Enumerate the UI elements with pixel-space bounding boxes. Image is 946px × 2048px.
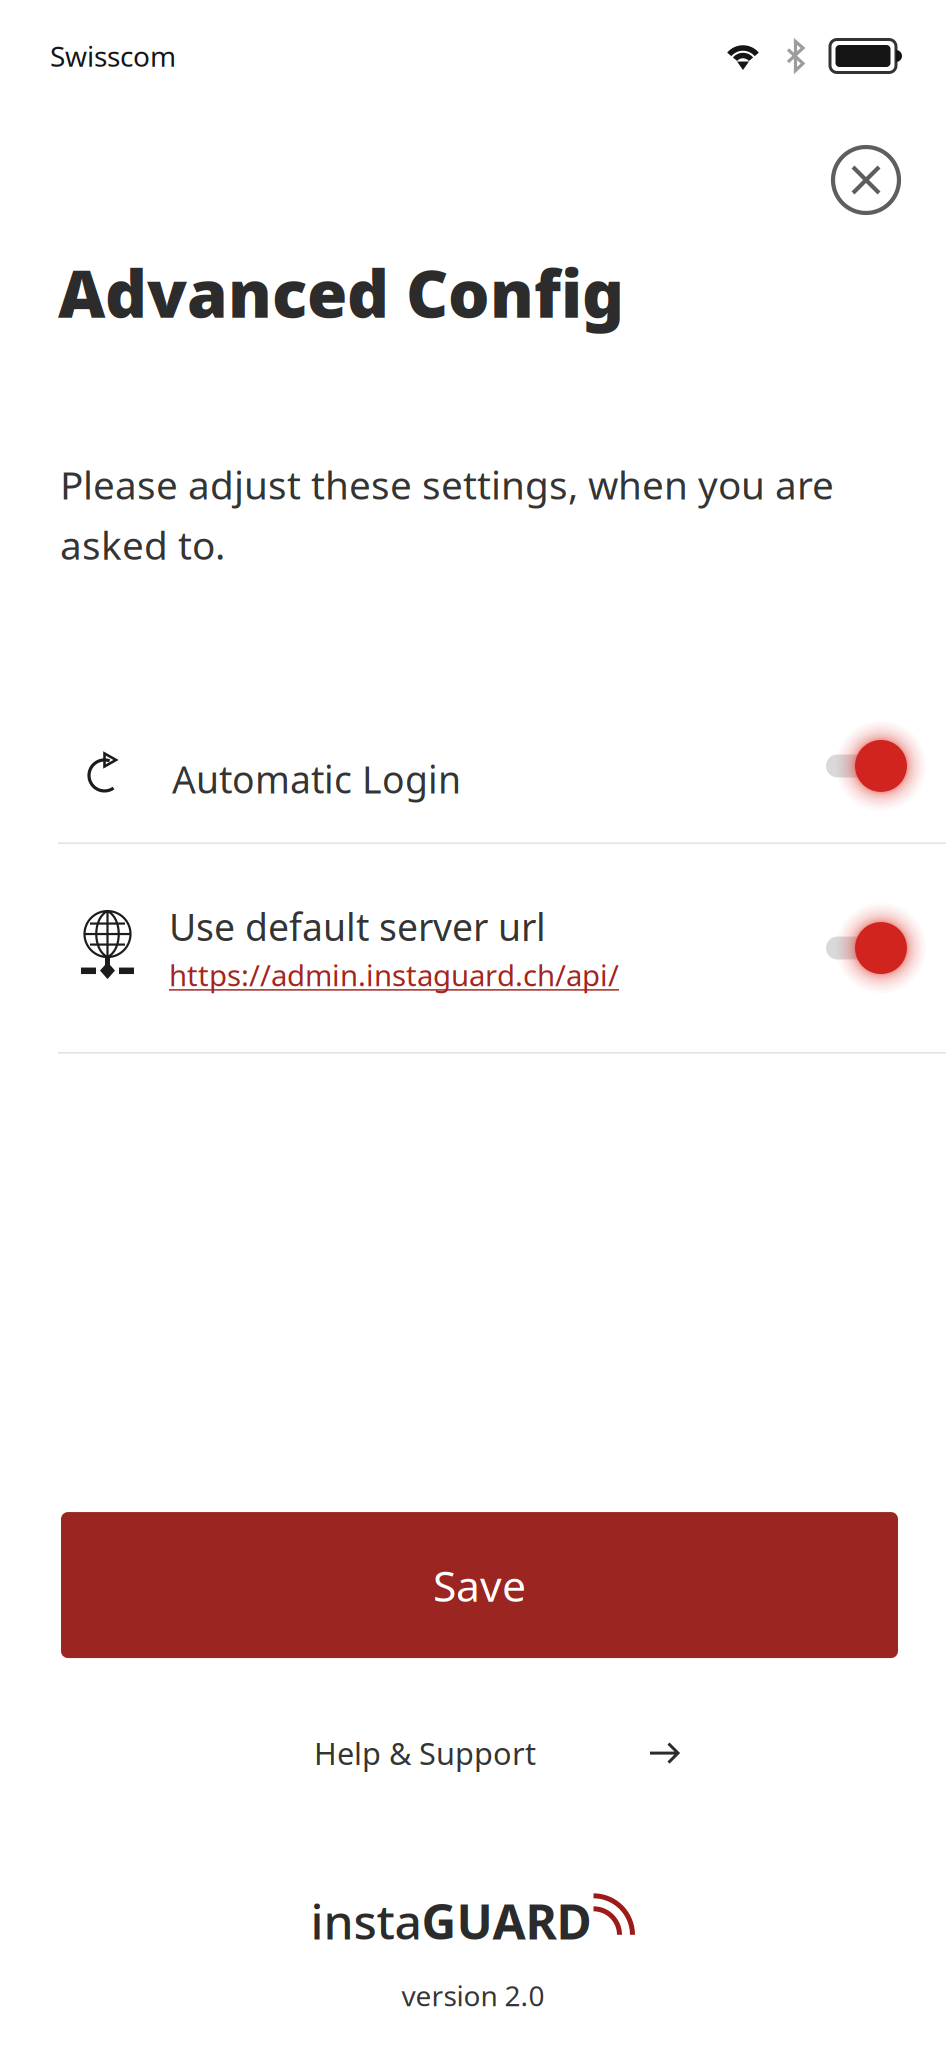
staticText: Please adjust these settings, when you a… (60, 459, 834, 570)
staticText: GUARD (421, 1889, 591, 1953)
staticText: https://admin.instaguard.ch/api/ (169, 955, 619, 994)
button[interactable]: Close (821, 135, 911, 225)
button[interactable]: Automatic Login (0, 715, 946, 842)
staticText: Swisscom (50, 37, 176, 75)
staticText: Save (433, 1557, 526, 1613)
staticText: Advanced Config (58, 249, 624, 336)
staticText: Automatic Login (172, 754, 461, 804)
button[interactable]: Save (61, 1512, 898, 1658)
button[interactable]: Help & Support (266, 1716, 680, 1790)
staticText: insta (310, 1889, 421, 1953)
staticText: Use default server url (169, 902, 546, 951)
button[interactable]: Use default server url (0, 844, 946, 1052)
staticText: Help & Support (314, 1733, 536, 1773)
staticText: version 2.0 (401, 1977, 544, 2014)
